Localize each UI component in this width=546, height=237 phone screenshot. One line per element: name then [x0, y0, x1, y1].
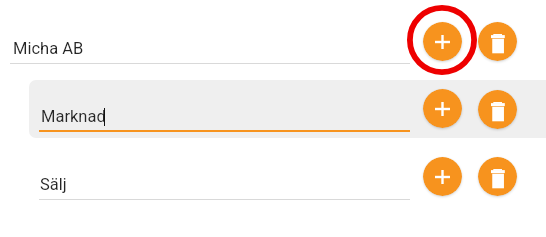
staticText: Micha AB	[13, 39, 84, 58]
button[interactable]: Delete row	[478, 22, 517, 61]
button[interactable]	[39, 100, 410, 132]
button[interactable]: Add row	[423, 22, 462, 61]
button[interactable]: Add row	[423, 157, 462, 196]
staticText: Marknad	[41, 107, 106, 126]
button[interactable]: Delete row	[478, 157, 517, 196]
button[interactable]	[10, 30, 410, 64]
button[interactable]: Add row	[423, 89, 462, 128]
button[interactable]: Delete row	[478, 90, 517, 129]
button[interactable]	[39, 166, 410, 199]
staticText: Sälj	[40, 175, 67, 194]
